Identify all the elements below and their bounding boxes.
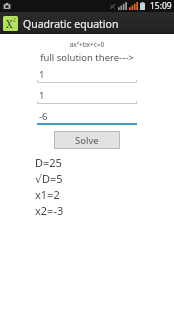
button[interactable]: 1: [37, 89, 137, 104]
staticText: D=25: [35, 155, 62, 170]
staticText: ax²+bx+c=0: [0, 40, 174, 49]
staticText: x1=2: [35, 187, 60, 202]
staticText: X: [6, 17, 13, 31]
button[interactable]: 1: [37, 68, 137, 83]
staticText: 1: [39, 68, 45, 81]
staticText: √D=5: [35, 171, 63, 186]
staticText: 15:09: [150, 0, 172, 12]
button[interactable]: Solve: [54, 131, 120, 149]
staticText: 2: [13, 17, 16, 24]
staticText: x2=-3: [35, 203, 64, 218]
staticText: Solve: [75, 134, 99, 147]
button[interactable]: -6: [37, 110, 137, 125]
staticText: -6: [39, 110, 48, 123]
staticText: full solution there--->: [0, 51, 174, 64]
staticText: 1: [39, 89, 45, 102]
staticText: Quadratic equation: [23, 17, 119, 31]
